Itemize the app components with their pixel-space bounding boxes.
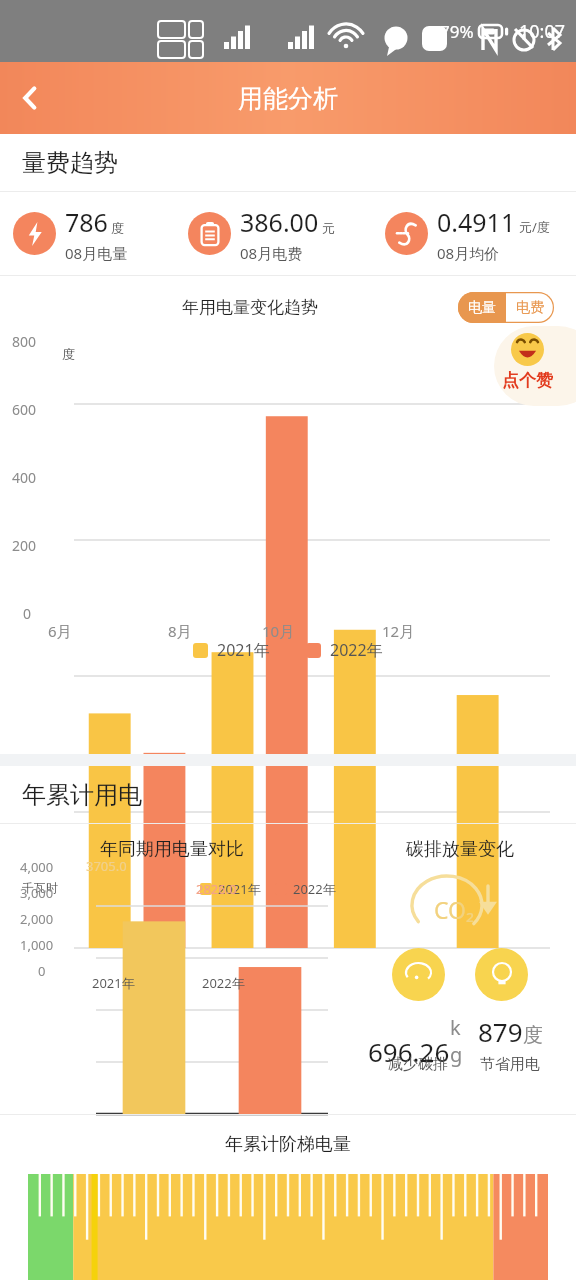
staticText: 度: [523, 1023, 543, 1048]
staticText: 0: [38, 962, 46, 980]
button[interactable]: 0.4911: [385, 192, 576, 275]
staticText: 08月均价: [437, 243, 500, 263]
staticText: 08月电量: [65, 243, 128, 263]
staticText: 3705.0: [86, 857, 127, 875]
staticText: 元/度: [519, 218, 550, 236]
staticText: 400: [12, 468, 37, 487]
staticText: 2021年: [217, 639, 270, 661]
staticText: 碳排放量变化: [406, 838, 514, 861]
staticText: 减少碳排: [388, 1055, 448, 1074]
staticText: 年累计阶梯电量: [225, 1133, 351, 1156]
staticText: 12月: [382, 621, 415, 641]
staticText: 79%: [440, 20, 474, 43]
staticText: 2022年: [293, 880, 336, 898]
staticText: 2022年: [330, 639, 383, 661]
staticText: 08月电费: [240, 243, 303, 263]
button[interactable]: 减少碳排: [392, 948, 445, 1001]
staticText: 电量: [468, 299, 496, 317]
staticText: 量费趋势: [22, 148, 118, 178]
staticText: 696.26: [368, 1034, 450, 1069]
staticText: 元: [322, 220, 335, 236]
button[interactable]: 电量: [458, 292, 506, 323]
button[interactable]: 节省用电: [475, 948, 528, 1001]
staticText: 用能分析: [238, 83, 338, 114]
staticText: 200: [12, 536, 37, 555]
staticText: 年同期用电量对比: [100, 838, 244, 861]
staticText: 年累计用电: [22, 780, 142, 810]
staticText: 879: [478, 1014, 523, 1049]
staticText: 4,000: [20, 858, 54, 876]
staticText: CO₂: [434, 894, 475, 925]
staticText: 600: [12, 400, 37, 419]
staticText: 800: [12, 332, 37, 351]
staticText: 年用电量变化趋势: [182, 297, 318, 318]
staticText: 386.00: [240, 205, 319, 239]
staticText: 8月: [168, 621, 192, 641]
staticText: 2,000: [20, 910, 54, 928]
staticText: 786: [65, 205, 108, 239]
button[interactable]: 786: [13, 192, 175, 275]
staticText: 1,000: [20, 936, 54, 954]
button[interactable]: 点个赞: [494, 326, 576, 406]
button[interactable]: 386.00: [188, 192, 372, 275]
staticText: 节省用电: [480, 1055, 540, 1074]
staticText: 点个赞: [502, 370, 553, 391]
staticText: 2021年: [92, 974, 135, 992]
staticText: 千瓦时: [22, 880, 58, 895]
staticText: 3,000: [20, 884, 54, 902]
staticText: 2826.0: [196, 880, 237, 898]
button[interactable]: 电费: [506, 292, 554, 323]
staticText: kg: [450, 1014, 468, 1068]
staticText: 电费: [516, 299, 544, 317]
staticText: 2021年: [218, 880, 261, 898]
staticText: 度: [111, 220, 124, 236]
staticText: 6月: [48, 621, 72, 641]
staticText: 2022年: [202, 974, 245, 992]
staticText: 度: [62, 346, 75, 362]
staticText: 0.4911: [437, 205, 516, 239]
staticText: 0: [23, 604, 32, 623]
staticText: 10月: [262, 621, 295, 641]
button[interactable]: Back: [6, 74, 54, 122]
staticText: 10:07: [519, 19, 566, 44]
